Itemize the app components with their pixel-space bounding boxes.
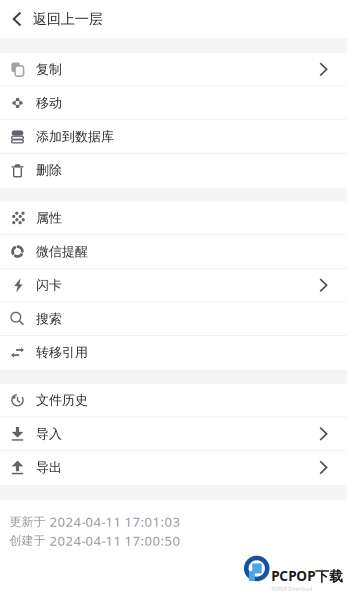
button[interactable]: 复制 [0, 53, 347, 87]
staticText: PCPOP Download [271, 585, 312, 592]
staticText: 闪卡 [36, 277, 62, 293]
button[interactable]: 搜索 [0, 303, 347, 336]
button[interactable]: 微信提醒 [0, 235, 347, 269]
staticText: 移动 [36, 95, 62, 111]
staticText: 复制 [36, 61, 62, 77]
staticText: 创建于 [9, 533, 45, 548]
staticText: 2024-04-11 17:00:50 [49, 532, 180, 550]
button[interactable]: 添加到数据库 [0, 120, 347, 154]
staticText: 属性 [36, 210, 62, 226]
button[interactable]: 导出 [0, 451, 347, 485]
staticText: 搜索 [36, 311, 62, 327]
staticText: 微信提醒 [36, 243, 88, 260]
button[interactable]: 闪卡 [0, 269, 347, 302]
button[interactable]: 返回上一层 [0, 0, 103, 38]
button[interactable]: 属性 [0, 202, 347, 235]
staticText: 返回上一层 [33, 10, 103, 28]
button[interactable]: 移动 [0, 87, 347, 120]
staticText: PCPOP下载 [271, 566, 343, 585]
staticText: 删除 [36, 162, 62, 178]
staticText: 添加到数据库 [36, 128, 114, 145]
button[interactable]: 文件历史 [0, 384, 347, 417]
staticText: 2024-04-11 17:01:03 [49, 513, 180, 531]
staticText: 导入 [36, 426, 62, 442]
button[interactable]: 导入 [0, 417, 347, 451]
button[interactable]: 删除 [0, 154, 347, 188]
staticText: 更新于 [9, 514, 45, 529]
staticText: 文件历史 [36, 392, 88, 408]
button[interactable]: 转移引用 [0, 336, 347, 370]
staticText: 导出 [36, 459, 62, 476]
staticText: 转移引用 [36, 344, 88, 361]
